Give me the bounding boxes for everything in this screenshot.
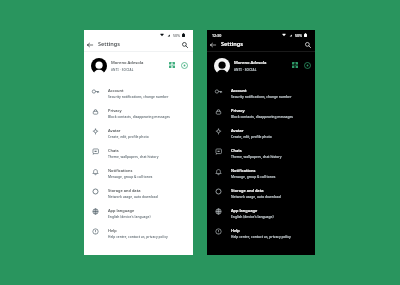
staticText: Account [231,88,247,93]
staticText: Chats [108,148,119,153]
staticText: Message, group & call tones [231,175,276,179]
button[interactable]: Search [302,39,313,50]
staticText: Help centre, contact us, privacy policy [231,235,291,239]
staticText: Create, edit, profile photo [231,135,272,139]
staticText: Storage and data [108,188,141,193]
staticText: Help [231,228,240,233]
staticText: Settings [221,40,243,47]
staticText: Block contacts, disappearing messages [108,115,170,119]
staticText: App language [108,208,135,213]
staticText: Notifications [231,168,256,173]
button[interactable]: Back [84,39,96,51]
staticText: Chats [231,148,242,153]
staticText: 50% [173,33,181,38]
button[interactable]: Account [84,83,193,103]
staticText: English (device's language) [231,215,274,219]
staticText: App language [231,208,258,213]
button[interactable]: App language [207,203,315,223]
button[interactable]: Moreno Adesola [84,53,193,78]
button[interactable]: Search [179,39,190,50]
button[interactable]: Chats [207,143,315,163]
staticText: Security notifications, change number [108,95,169,99]
staticText: Message, group & call tones [108,175,153,179]
staticText: Create, edit, profile photo [108,135,149,139]
button[interactable]: Chats [84,143,193,163]
button[interactable]: Help [84,223,193,243]
staticText: Moreno Adesola [111,60,144,66]
button[interactable]: QR code [167,60,177,70]
button[interactable]: App language [84,203,193,223]
staticText: #NTI · SOCIAL [111,68,134,72]
staticText: Notifications [108,168,133,173]
button[interactable]: QR code [290,60,300,70]
button[interactable]: Notifications [84,163,193,183]
staticText: Avatar [231,128,244,133]
button[interactable]: Moreno Adesola [207,53,315,78]
button[interactable]: Status [179,60,189,70]
staticText: 50% [295,33,303,38]
staticText: Theme, wallpapers, chat history [108,155,159,159]
button[interactable]: Privacy [207,103,315,123]
button[interactable]: Notifications [207,163,315,183]
staticText: Security notifications, change number [231,95,292,99]
staticText: Avatar [108,128,121,133]
staticText: Storage and data [231,188,264,193]
staticText: Network usage, auto download [231,195,281,199]
button[interactable]: Storage and data [207,183,315,203]
staticText: 12:30 [212,33,222,38]
button[interactable]: Status [302,60,312,70]
button[interactable]: Account [207,83,315,103]
button[interactable]: Help [207,223,315,243]
button[interactable]: Avatar [84,123,193,143]
button[interactable]: Back [207,39,219,51]
staticText: Network usage, auto download [108,195,158,199]
staticText: English (device's language) [108,215,151,219]
staticText: Help [108,228,117,233]
staticText: Account [108,88,124,93]
staticText: Help centre, contact us, privacy policy [108,235,168,239]
staticText: Moreno Adesola [234,60,267,66]
button[interactable]: Privacy [84,103,193,123]
staticText: Block contacts, disappearing messages [231,115,293,119]
staticText: Settings [98,40,120,47]
staticText: #NTI · SOCIAL [234,68,257,72]
button[interactable]: Storage and data [84,183,193,203]
staticText: Privacy [231,108,245,113]
staticText: Privacy [108,108,122,113]
staticText: Theme, wallpapers, chat history [231,155,282,159]
button[interactable]: Avatar [207,123,315,143]
